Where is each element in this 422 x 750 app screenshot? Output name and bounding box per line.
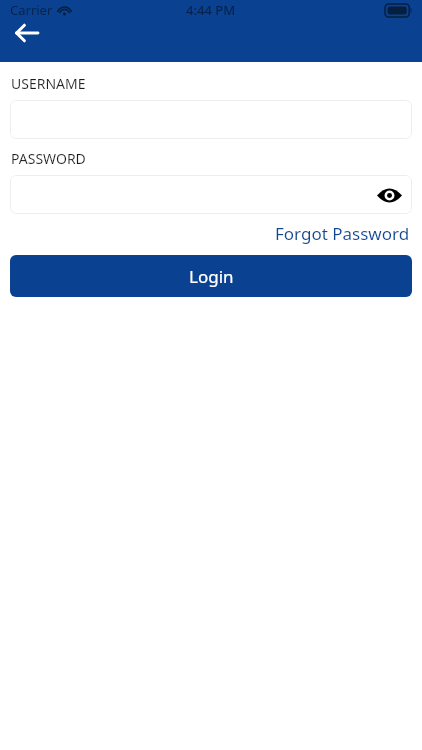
button[interactable]: Show password [372, 178, 406, 212]
staticText: PASSWORD [11, 149, 86, 168]
button[interactable]: Back [8, 14, 46, 52]
staticText: Login [189, 265, 234, 288]
button[interactable]: Show password [10, 175, 412, 214]
staticText: USERNAME [11, 74, 86, 93]
button[interactable]: Forgot Password [273, 220, 412, 247]
staticText: 4:44 PM [186, 1, 236, 19]
button[interactable]: Login [10, 255, 412, 297]
button[interactable] [10, 100, 412, 139]
staticText: Forgot Password [275, 222, 410, 245]
staticText: Carrier [10, 1, 53, 19]
